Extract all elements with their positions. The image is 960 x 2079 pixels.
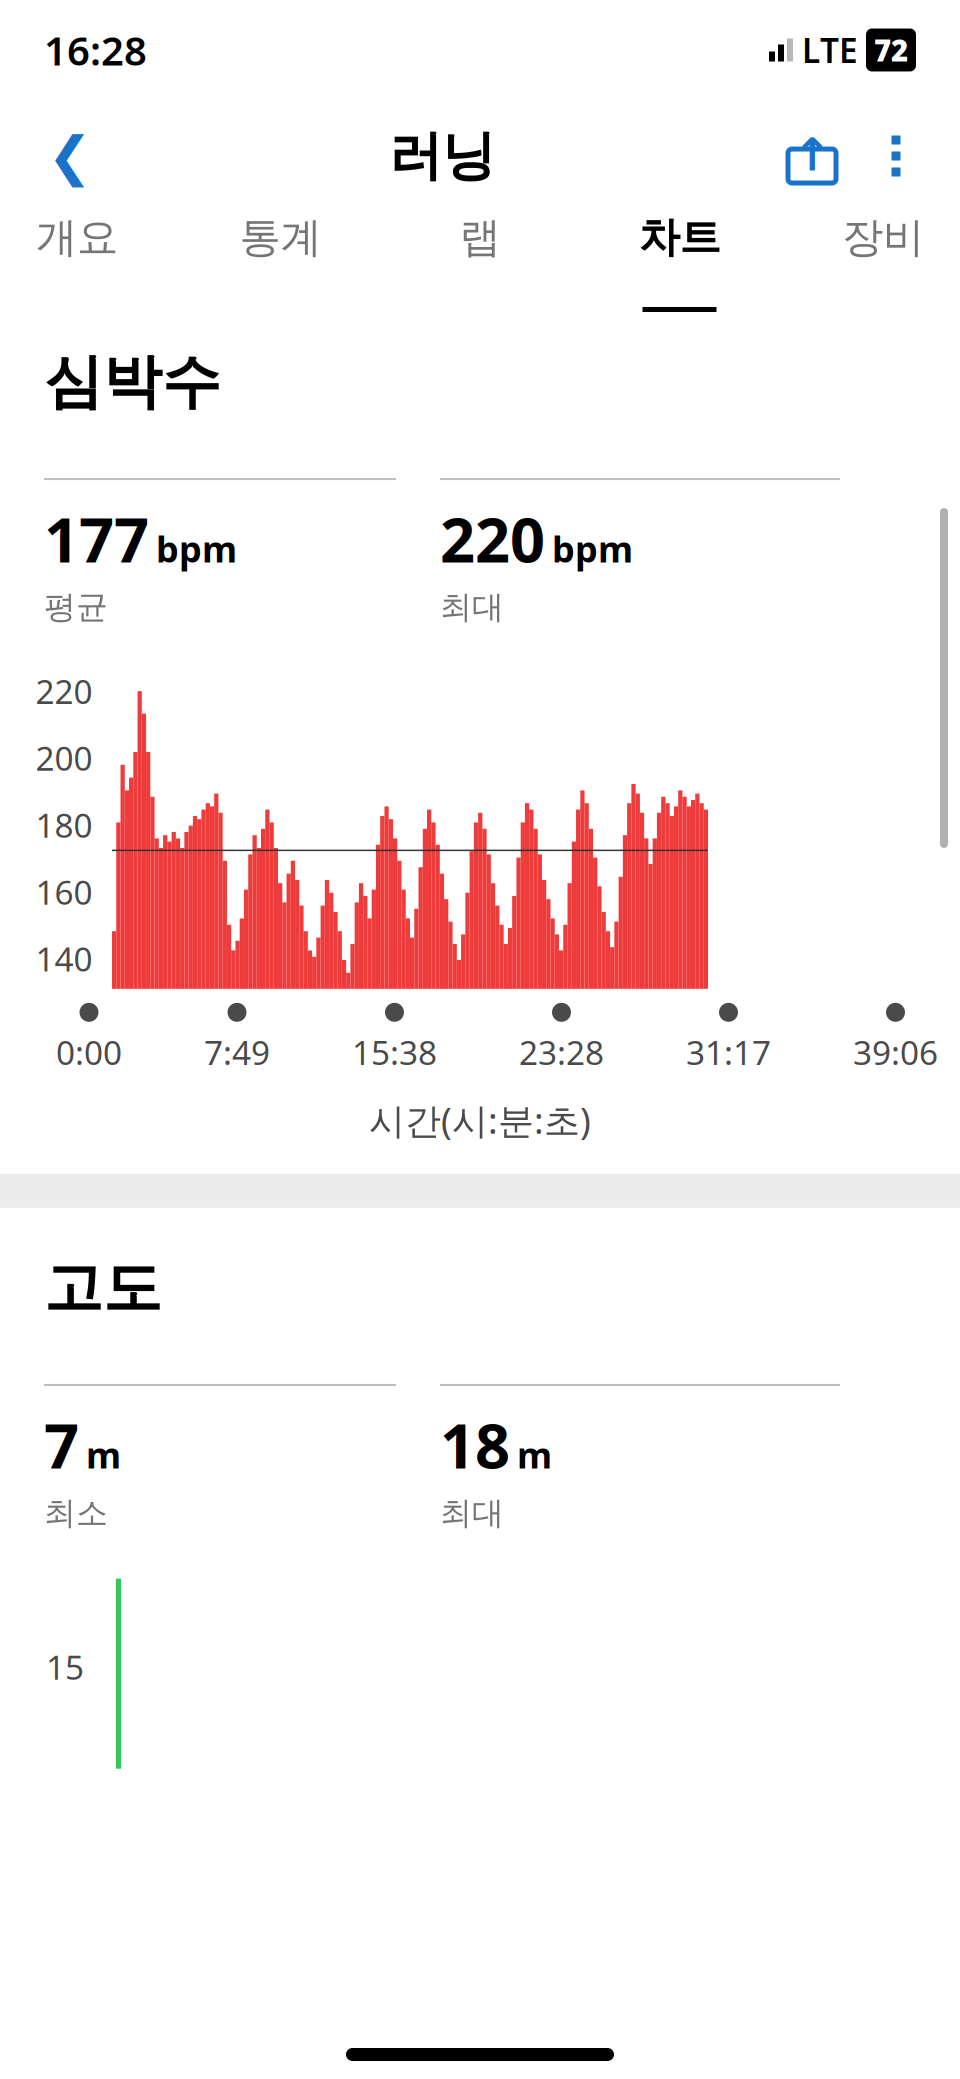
staticText: 시간(시:분:초) bbox=[369, 1096, 591, 1144]
staticText: 차트 bbox=[638, 212, 720, 263]
staticText: 최대 bbox=[440, 1493, 504, 1533]
staticText: 평균 bbox=[44, 587, 108, 627]
staticText: m bbox=[517, 1431, 552, 1478]
staticText: 고도 bbox=[44, 1252, 162, 1324]
staticText: 심박수 bbox=[44, 346, 221, 418]
staticText: 200 bbox=[35, 736, 92, 780]
staticText: 23:28 bbox=[519, 1030, 604, 1074]
staticText: 31:17 bbox=[686, 1030, 771, 1074]
staticText: 72 bbox=[874, 30, 908, 69]
staticText: ❮ bbox=[47, 126, 92, 186]
staticText: 160 bbox=[35, 870, 92, 914]
button[interactable]: 개요 bbox=[26, 212, 128, 312]
button[interactable]: Share bbox=[768, 110, 856, 202]
staticText: 18 bbox=[440, 1404, 510, 1485]
staticText: 220 bbox=[440, 498, 545, 579]
staticText: 140 bbox=[35, 936, 92, 981]
staticText: 0:00 bbox=[56, 1030, 122, 1074]
staticText: 220 bbox=[35, 669, 92, 713]
staticText: LTE bbox=[802, 28, 858, 72]
staticText: 장비 bbox=[842, 212, 924, 263]
staticText: 15 bbox=[46, 1645, 84, 1689]
staticText: 최소 bbox=[44, 1493, 108, 1533]
staticText: 180 bbox=[35, 803, 92, 847]
button[interactable]: Back bbox=[24, 110, 116, 202]
button[interactable]: 통계 bbox=[229, 212, 331, 312]
staticText: bpm bbox=[552, 525, 633, 572]
staticText: m bbox=[86, 1431, 121, 1478]
staticText: bpm bbox=[156, 525, 237, 572]
staticText: 15:38 bbox=[352, 1030, 437, 1074]
staticText: 7:49 bbox=[204, 1030, 270, 1074]
staticText: ↑ bbox=[793, 129, 831, 180]
staticText: 7 bbox=[44, 1404, 79, 1485]
button[interactable]: 장비 bbox=[832, 212, 934, 312]
button[interactable]: 랩 bbox=[433, 212, 527, 312]
staticText: 39:06 bbox=[853, 1030, 938, 1074]
staticText: 개요 bbox=[36, 212, 118, 263]
staticText: 통계 bbox=[239, 212, 321, 263]
staticText: 랩 bbox=[459, 212, 500, 263]
staticText: 177 bbox=[44, 498, 149, 579]
staticText: 16:28 bbox=[44, 23, 147, 76]
button[interactable]: 차트 bbox=[628, 212, 730, 312]
staticText: 러닝 bbox=[389, 123, 495, 189]
button[interactable]: More options bbox=[856, 110, 936, 202]
staticText: 최대 bbox=[440, 587, 504, 627]
